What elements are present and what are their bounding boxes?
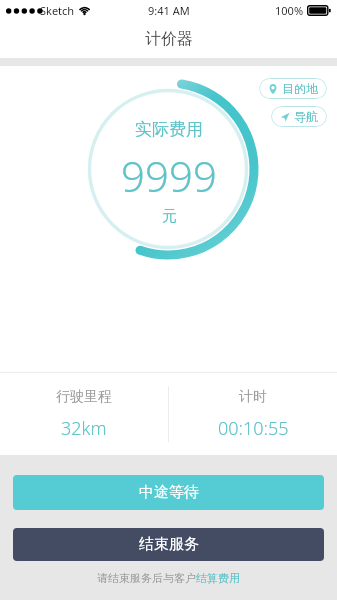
staticText: 100% bbox=[275, 3, 304, 18]
staticText: 9:41 AM bbox=[148, 3, 190, 18]
button[interactable]: 结束服务 bbox=[13, 528, 324, 561]
staticText: 导航 bbox=[294, 109, 318, 124]
button[interactable]: 目的地 bbox=[259, 78, 327, 99]
staticText: 计时 bbox=[239, 388, 267, 406]
staticText: Sketch bbox=[40, 3, 75, 18]
staticText: 请结束服务后与客户结算费用 bbox=[97, 571, 240, 585]
staticText: 9999 bbox=[121, 147, 217, 204]
button[interactable]: 中途等待 bbox=[13, 475, 324, 510]
staticText: 32km bbox=[61, 416, 107, 441]
staticText: 元 bbox=[162, 207, 177, 226]
staticText: 结束服务 bbox=[139, 535, 199, 554]
button[interactable]: 导航 bbox=[271, 106, 327, 127]
staticText: 中途等待 bbox=[139, 483, 199, 502]
staticText: 00:10:55 bbox=[218, 416, 289, 441]
staticText: 计价器 bbox=[145, 29, 193, 49]
staticText: 行驶里程 bbox=[56, 388, 112, 406]
staticText: 目的地 bbox=[282, 81, 318, 96]
staticText: 实际费用 bbox=[135, 119, 203, 140]
